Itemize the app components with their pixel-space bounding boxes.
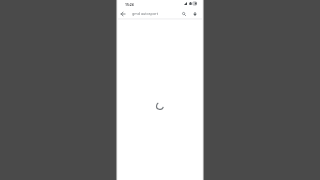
staticText: 15:24 [125,2,134,7]
button[interactable]: Back [118,9,128,19]
staticText: gmd autosport [132,11,158,16]
other: Loading [156,102,164,110]
button[interactable]: Download [190,9,200,19]
button[interactable]: Search [179,9,189,19]
button[interactable]: gmd autosport [129,7,177,19]
